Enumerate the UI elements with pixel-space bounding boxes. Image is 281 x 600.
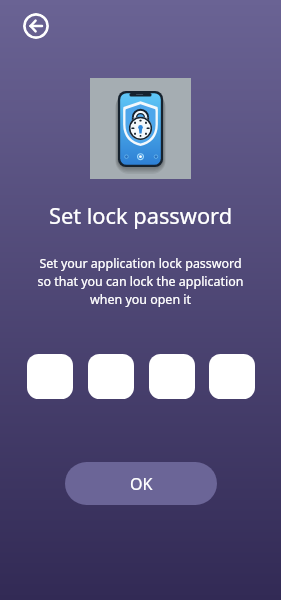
staticText: Set your application lock password so th… <box>0 255 281 600</box>
button[interactable]: PIN digit 3 <box>149 354 195 399</box>
button[interactable]: PIN digit 2 <box>88 354 134 399</box>
staticText: Set lock password <box>0 201 281 600</box>
staticText: OK <box>130 473 153 495</box>
button[interactable]: PIN digit 4 <box>209 354 255 399</box>
button[interactable]: OK <box>65 462 217 505</box>
button[interactable]: PIN digit 1 <box>27 354 73 399</box>
button[interactable]: Back <box>23 13 49 39</box>
